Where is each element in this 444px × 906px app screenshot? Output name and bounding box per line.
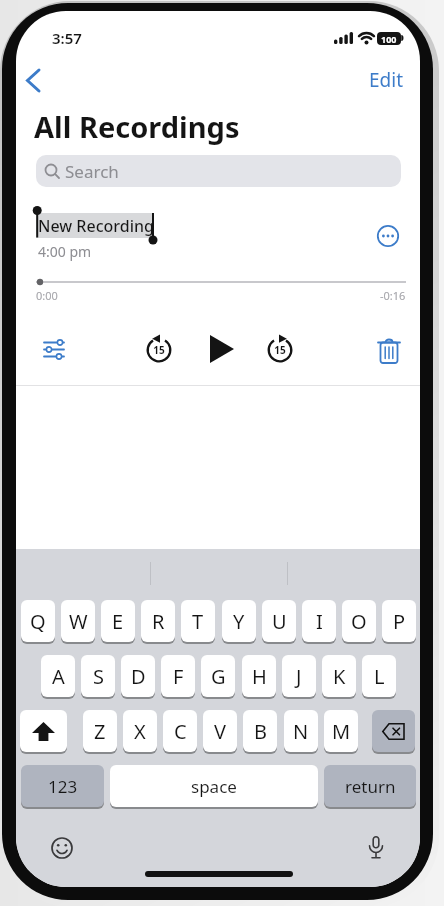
staticText: 4:00 pm [38, 242, 92, 261]
button[interactable]: 15 [266, 336, 294, 364]
button[interactable]: V [203, 710, 237, 752]
staticText: N [293, 718, 309, 745]
button[interactable]: Search [36, 155, 401, 187]
button[interactable] [51, 837, 73, 859]
button[interactable] [377, 338, 401, 364]
button[interactable]: U [262, 600, 296, 642]
button[interactable]: X [123, 710, 157, 752]
staticText: Q [30, 608, 46, 635]
button[interactable]: G [201, 655, 235, 697]
button[interactable]: B [243, 710, 277, 752]
staticText: B [254, 718, 267, 745]
staticText: U [272, 608, 287, 635]
staticText: X [134, 718, 146, 745]
staticText: E [112, 608, 124, 635]
staticText: All Recordings [34, 107, 240, 146]
staticText: 15 [274, 343, 286, 357]
button[interactable]: A [41, 655, 75, 697]
button[interactable]: 15 [145, 336, 173, 364]
button[interactable]: M [324, 710, 358, 752]
button[interactable]: L [362, 655, 396, 697]
button[interactable]: Z [83, 710, 117, 752]
button[interactable]: O [342, 600, 376, 642]
button[interactable]: 123 [21, 765, 104, 807]
button[interactable]: F [161, 655, 195, 697]
button[interactable]: Edit [361, 67, 411, 93]
staticText: W [69, 608, 88, 635]
staticText: F [173, 663, 184, 690]
button[interactable]: Y [222, 600, 256, 642]
button[interactable] [368, 836, 384, 860]
staticText: J [296, 663, 302, 690]
staticText: G [211, 663, 226, 690]
button[interactable]: H [242, 655, 276, 697]
staticText: Edit [369, 67, 404, 93]
button[interactable] [20, 710, 67, 752]
staticText: Y [233, 608, 245, 635]
staticText: space [191, 775, 237, 798]
button[interactable]: I [302, 600, 336, 642]
staticText: I [316, 608, 323, 635]
staticText: P [393, 608, 406, 635]
button[interactable]: return [324, 765, 416, 807]
staticText: L [374, 663, 385, 690]
button[interactable]: N [284, 710, 318, 752]
staticText: New Recording [38, 215, 154, 237]
staticText: return [345, 775, 396, 798]
button[interactable]: K [322, 655, 356, 697]
button[interactable] [38, 339, 70, 361]
button[interactable] [17, 65, 47, 95]
staticText: C [174, 718, 187, 745]
staticText: Z [94, 718, 106, 745]
staticText: D [131, 663, 146, 690]
button[interactable]: W [61, 600, 95, 642]
staticText: S [93, 663, 104, 690]
staticText: O [351, 608, 367, 635]
staticText: R [152, 608, 165, 635]
button[interactable]: T [181, 600, 215, 642]
staticText: 0:00 [36, 288, 58, 303]
staticText: -0:16 [380, 288, 406, 302]
button[interactable] [207, 335, 235, 363]
staticText: T [192, 608, 204, 635]
button[interactable]: Q [21, 600, 55, 642]
button[interactable]: E [101, 600, 135, 642]
button[interactable]: S [81, 655, 115, 697]
button[interactable]: R [141, 600, 175, 642]
staticText: Search [65, 160, 119, 183]
staticText: 3:57 [52, 28, 82, 48]
staticText: 15 [153, 343, 165, 357]
button[interactable]: D [121, 655, 155, 697]
staticText: H [252, 663, 267, 690]
button[interactable]: C [163, 710, 197, 752]
button[interactable] [376, 224, 400, 248]
staticText: M [332, 718, 351, 745]
button[interactable]: J [282, 655, 316, 697]
staticText: A [52, 663, 65, 690]
staticText: V [214, 718, 226, 745]
button[interactable]: P [382, 600, 416, 642]
button[interactable] [372, 710, 415, 752]
staticText: 100 [381, 33, 397, 45]
staticText: 123 [48, 775, 78, 798]
button[interactable]: space [110, 765, 318, 807]
staticText: K [333, 663, 346, 690]
